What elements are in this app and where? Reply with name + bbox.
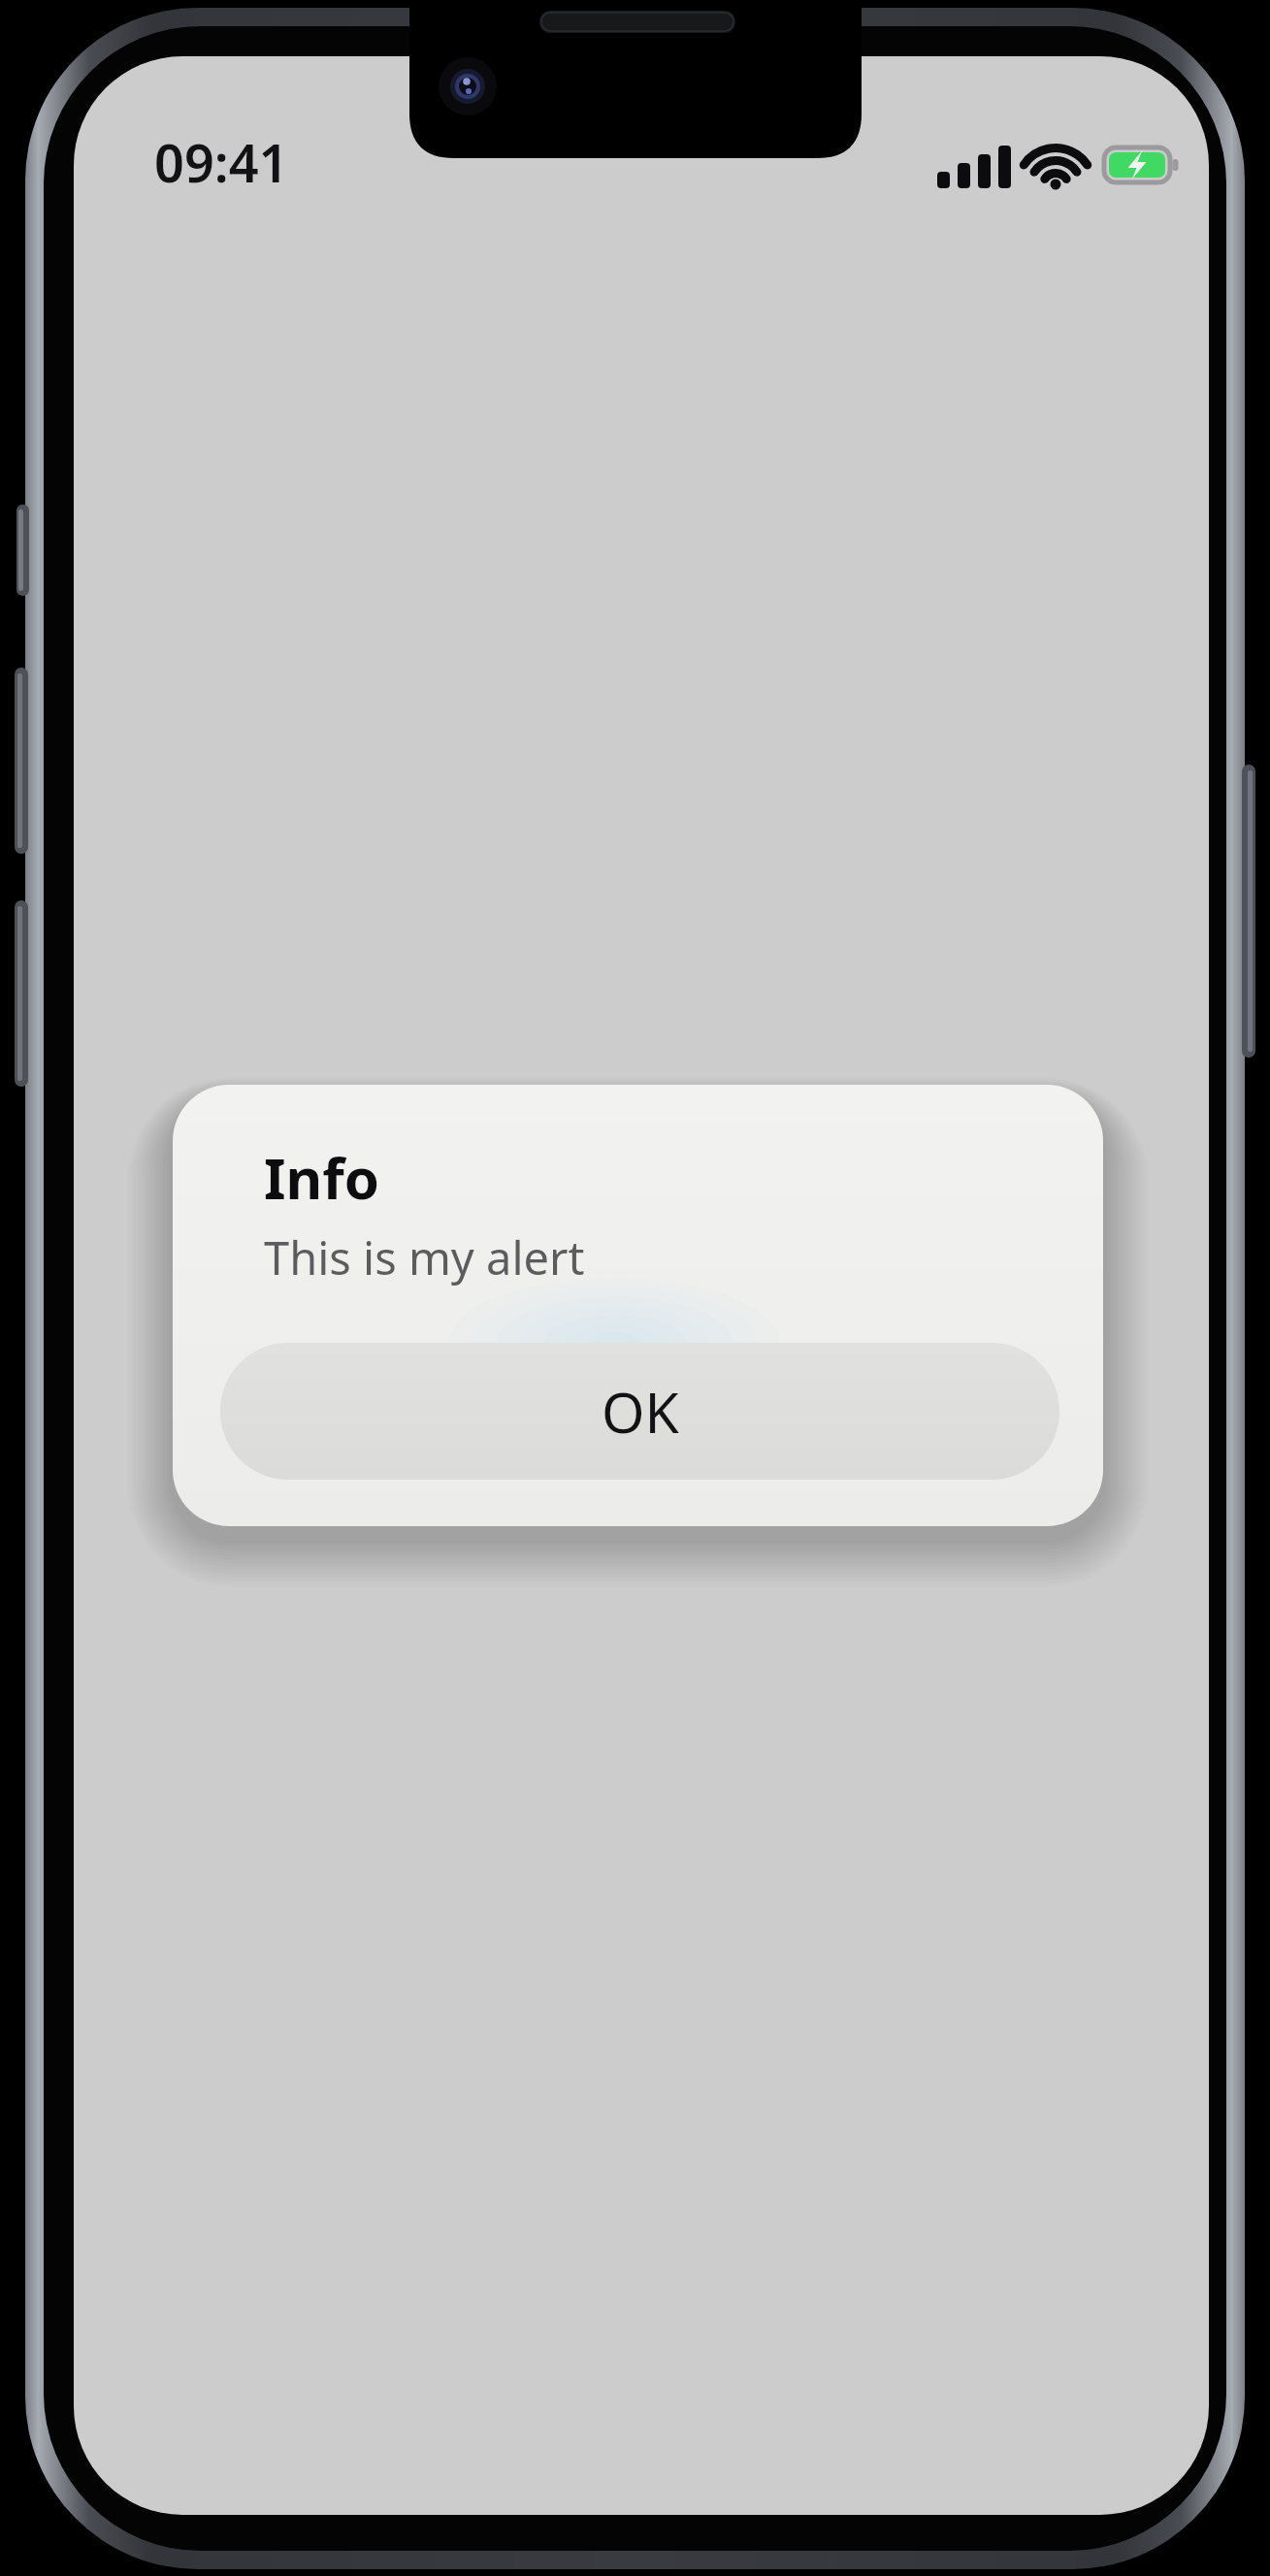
staticText: This is my alert bbox=[264, 1226, 585, 1288]
staticText: 09:41 bbox=[154, 126, 289, 198]
staticText: Info bbox=[264, 1139, 379, 1216]
staticText: OK bbox=[602, 1374, 679, 1450]
button[interactable]: OK bbox=[220, 1343, 1059, 1480]
